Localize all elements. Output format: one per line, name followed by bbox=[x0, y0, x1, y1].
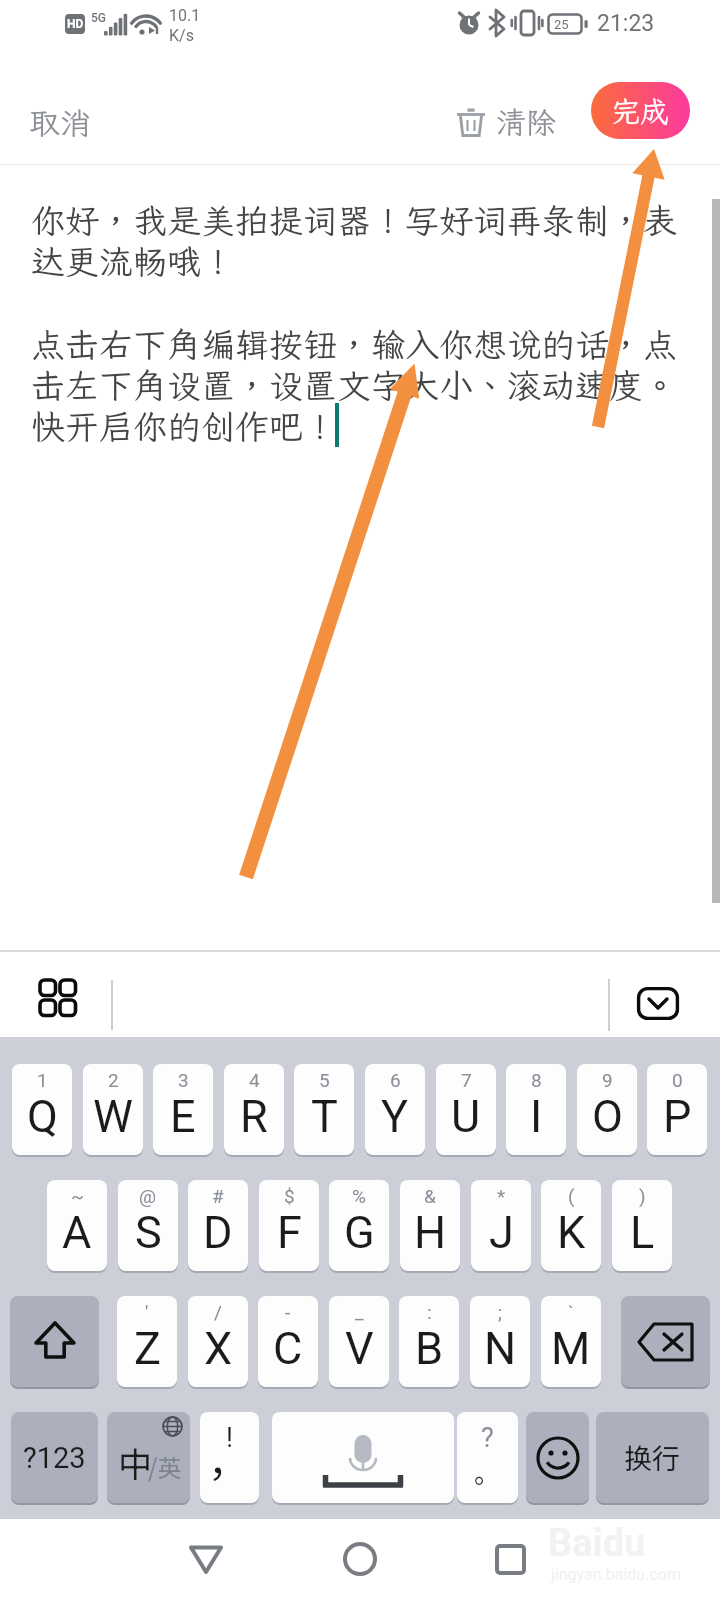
staticText: R bbox=[240, 1090, 268, 1143]
staticText: ? bbox=[481, 1422, 494, 1454]
button[interactable]: 5 bbox=[294, 1064, 354, 1155]
staticText: 完成 bbox=[611, 92, 670, 130]
button[interactable]: Hide keyboard bbox=[628, 977, 688, 1029]
staticText: Z bbox=[134, 1322, 161, 1375]
staticText: 。 bbox=[474, 1453, 501, 1491]
staticText: 你好，我是美拍提词器！写好词再录制，表达更流畅哦！ bbox=[31, 198, 689, 284]
button[interactable]: Emoji bbox=[526, 1412, 589, 1503]
staticText: / bbox=[214, 1301, 222, 1323]
staticText: : bbox=[427, 1301, 432, 1323]
button[interactable]: - bbox=[258, 1296, 318, 1387]
staticText: ' bbox=[145, 1301, 149, 1323]
staticText: N bbox=[484, 1322, 517, 1375]
staticText: ~ bbox=[71, 1185, 84, 1207]
staticText: 换行 bbox=[624, 1437, 681, 1478]
staticText: 21:23 bbox=[597, 10, 655, 37]
button[interactable]: ? bbox=[457, 1412, 518, 1503]
button[interactable]: Switch language bbox=[107, 1412, 190, 1503]
button[interactable]: & bbox=[400, 1180, 460, 1271]
button[interactable]: _ bbox=[329, 1296, 389, 1387]
staticText: 点击右下角编辑按钮，输入你想说的话，点击左下角设置，设置文字大小、滚动速度。快开… bbox=[31, 322, 689, 449]
staticText: P bbox=[663, 1090, 692, 1143]
staticText: E bbox=[170, 1090, 196, 1143]
staticText: $ bbox=[284, 1185, 295, 1207]
button[interactable]: Shift bbox=[10, 1296, 99, 1387]
button[interactable]: 3 bbox=[153, 1064, 213, 1155]
button[interactable]: 完成 bbox=[591, 82, 690, 139]
button[interactable]: @ bbox=[118, 1180, 178, 1271]
staticText: % bbox=[352, 1185, 366, 1207]
staticText: D bbox=[203, 1206, 233, 1259]
staticText: 10.1 K/s bbox=[169, 6, 201, 45]
staticText: ?123 bbox=[23, 1441, 86, 1475]
staticText: ( bbox=[568, 1185, 575, 1207]
button[interactable]: ?123 bbox=[11, 1412, 98, 1503]
button[interactable]: 9 bbox=[577, 1064, 637, 1155]
button[interactable]: 1 bbox=[12, 1064, 72, 1155]
staticText: 6 bbox=[390, 1069, 401, 1091]
staticText: L bbox=[630, 1206, 655, 1259]
button[interactable]: Recents bbox=[480, 1529, 540, 1589]
staticText: 中 bbox=[118, 1438, 152, 1487]
button[interactable]: ( bbox=[541, 1180, 601, 1271]
staticText: 3 bbox=[178, 1069, 189, 1091]
staticText: A bbox=[62, 1206, 92, 1259]
staticText: I bbox=[530, 1090, 543, 1143]
button[interactable]: 4 bbox=[224, 1064, 284, 1155]
staticText: U bbox=[451, 1090, 481, 1143]
button[interactable]: Keyboard panels bbox=[29, 966, 93, 1030]
staticText: ; bbox=[498, 1301, 503, 1323]
staticText: # bbox=[212, 1185, 224, 1207]
button[interactable]: ) bbox=[612, 1180, 672, 1271]
staticText: & bbox=[424, 1185, 436, 1207]
staticText: 7 bbox=[461, 1069, 472, 1091]
staticText: 清除 bbox=[496, 102, 556, 142]
button[interactable]: 6 bbox=[365, 1064, 425, 1155]
button[interactable]: % bbox=[329, 1180, 389, 1271]
staticText: G bbox=[344, 1206, 375, 1259]
staticText: 4 bbox=[249, 1069, 260, 1091]
button[interactable]: 7 bbox=[436, 1064, 496, 1155]
staticText: - bbox=[285, 1301, 291, 1323]
button[interactable]: Home bbox=[330, 1529, 390, 1589]
staticText: B bbox=[415, 1322, 444, 1375]
button[interactable]: Delete bbox=[621, 1296, 710, 1387]
button[interactable]: * bbox=[471, 1180, 531, 1271]
staticText: ) bbox=[639, 1185, 646, 1207]
staticText: @ bbox=[139, 1185, 157, 1207]
button[interactable] bbox=[272, 1412, 454, 1503]
button[interactable]: / bbox=[188, 1296, 248, 1387]
staticText: * bbox=[497, 1185, 506, 1207]
staticText: 2 bbox=[108, 1069, 119, 1091]
button[interactable]: 8 bbox=[506, 1064, 566, 1155]
staticText: T bbox=[311, 1090, 338, 1143]
staticText: 25 bbox=[554, 17, 569, 32]
staticText: 5 bbox=[319, 1069, 330, 1091]
button[interactable]: 换行 bbox=[596, 1412, 709, 1503]
staticText: Q bbox=[27, 1090, 58, 1143]
button[interactable]: 取消 bbox=[18, 94, 102, 150]
staticText: M bbox=[551, 1322, 591, 1375]
staticText: X bbox=[204, 1322, 233, 1375]
button[interactable]: ! bbox=[200, 1412, 259, 1503]
button[interactable]: : bbox=[399, 1296, 459, 1387]
staticText: jingyan.baidu.com bbox=[551, 1565, 681, 1584]
staticText: 8 bbox=[531, 1069, 542, 1091]
staticText: 5G bbox=[91, 11, 106, 25]
button[interactable]: ` bbox=[541, 1296, 601, 1387]
button[interactable]: 清除 bbox=[452, 94, 560, 150]
button[interactable]: ' bbox=[117, 1296, 177, 1387]
staticText: F bbox=[277, 1206, 302, 1259]
staticText: V bbox=[345, 1322, 374, 1375]
button[interactable]: Back bbox=[176, 1529, 236, 1589]
staticText: ` bbox=[568, 1301, 574, 1323]
staticText: O bbox=[592, 1090, 623, 1143]
button[interactable]: $ bbox=[259, 1180, 319, 1271]
button[interactable]: # bbox=[188, 1180, 248, 1271]
button[interactable]: ~ bbox=[47, 1180, 107, 1271]
button[interactable]: ; bbox=[470, 1296, 530, 1387]
button[interactable]: 2 bbox=[83, 1064, 143, 1155]
staticText: ， bbox=[208, 1431, 248, 1489]
button[interactable]: 0 bbox=[647, 1064, 707, 1155]
staticText: K bbox=[557, 1206, 586, 1259]
